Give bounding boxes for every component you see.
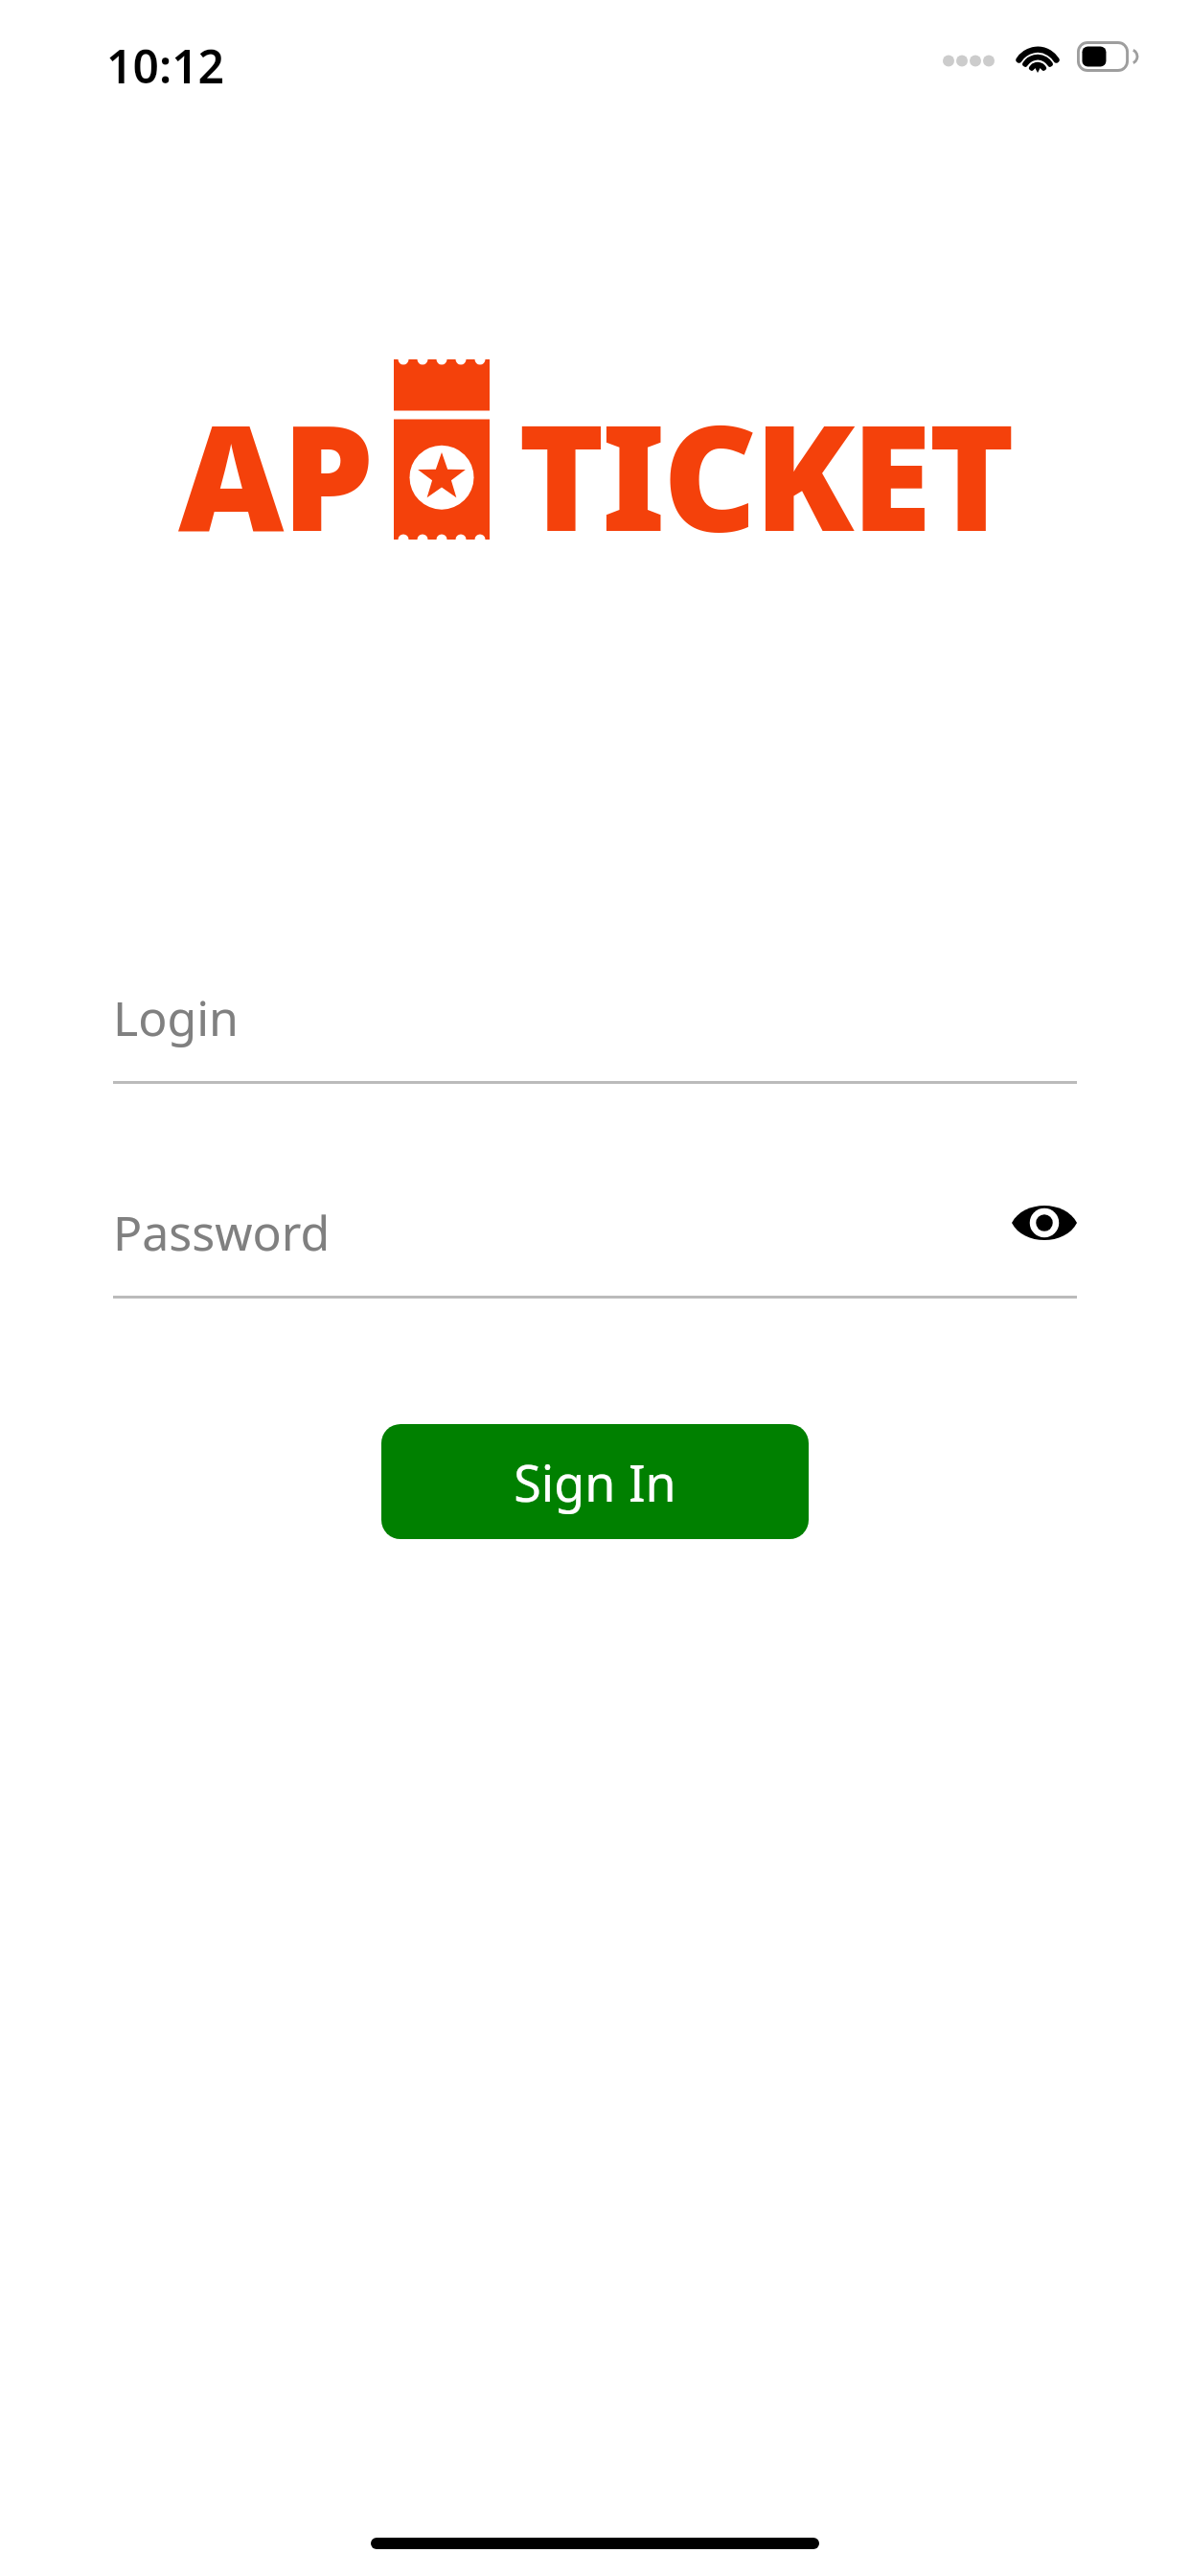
button[interactable]: Sign In xyxy=(381,1424,809,1539)
staticText: AP xyxy=(178,376,373,541)
staticText: Login xyxy=(113,985,239,1050)
staticText: TICKET xyxy=(518,376,1013,541)
staticText: Sign In xyxy=(514,1448,676,1516)
staticText: 10:12 xyxy=(106,34,225,97)
button[interactable]: Password xyxy=(113,1168,985,1296)
staticText: Password xyxy=(113,1200,331,1265)
button[interactable]: Login xyxy=(113,954,1077,1081)
button[interactable]: Show password xyxy=(998,1177,1090,1269)
